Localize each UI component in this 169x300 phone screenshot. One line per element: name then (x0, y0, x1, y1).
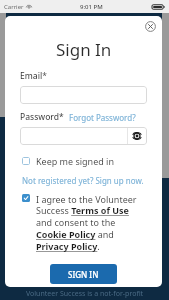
button[interactable]: Forgot Password? (69, 112, 136, 123)
staticText: Keep me signed in (36, 155, 114, 167)
button[interactable]: Email input (20, 86, 147, 104)
button[interactable]: Password input (20, 127, 124, 145)
button[interactable]: SIGN IN (50, 264, 117, 284)
staticText: Forgot Password? (69, 112, 136, 123)
button[interactable]: Keep me signed in (22, 155, 114, 167)
staticText: 9:01 PM (80, 3, 103, 11)
staticText: Password* (20, 111, 64, 123)
staticText: Not registered yet? Sign up now. (22, 175, 144, 186)
button[interactable]: Close (144, 20, 157, 33)
staticText: SIGN IN (68, 269, 99, 280)
staticText: Volunteer Success is a not-for-profit (26, 289, 144, 299)
staticText: I agree to the Volunteer Success Terms o… (36, 193, 147, 253)
button[interactable]: Not registered yet? Sign up now. (22, 175, 144, 186)
staticText: Carrier (4, 3, 24, 11)
button[interactable]: Show password (127, 127, 147, 145)
staticText: Sign In (56, 38, 112, 61)
staticText: Email* (20, 70, 47, 82)
button[interactable]: I agree to the Volunteer Success Terms o… (22, 193, 147, 253)
